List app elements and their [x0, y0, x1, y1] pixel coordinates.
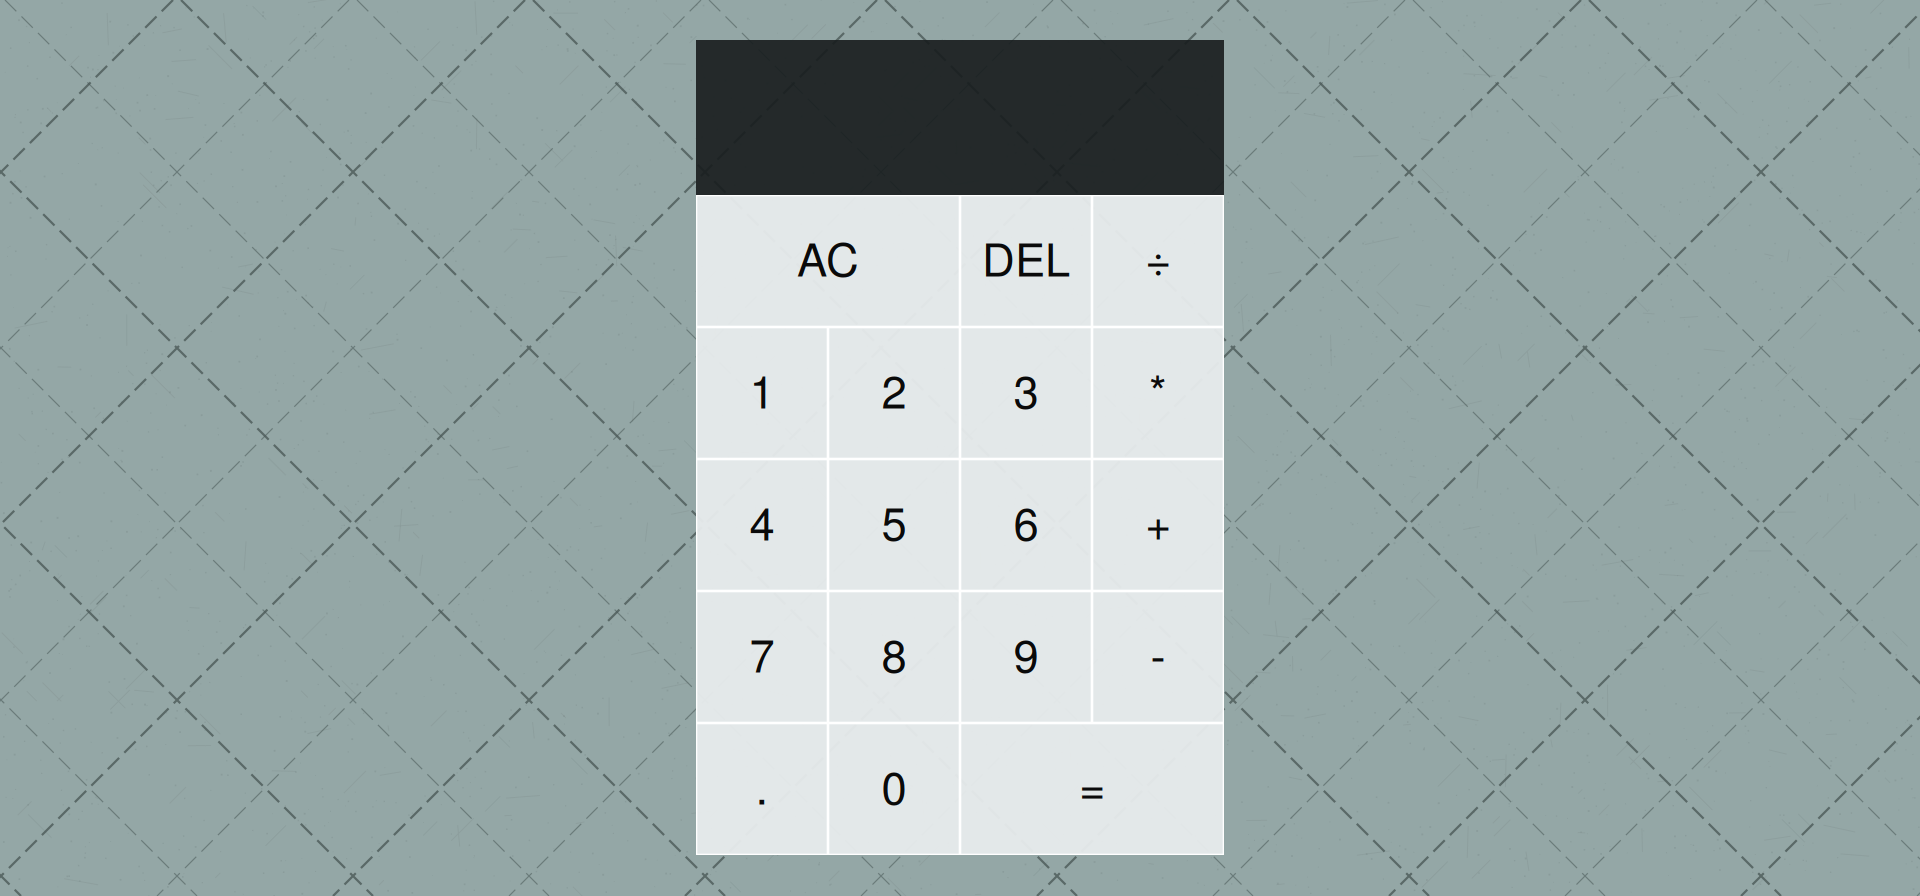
button[interactable]: = [960, 723, 1224, 855]
button[interactable]: 5 [828, 459, 960, 591]
staticText: 4 [749, 488, 774, 553]
staticText: 5 [881, 488, 906, 553]
staticText: AC [797, 224, 859, 289]
button[interactable]: 6 [960, 459, 1092, 591]
button[interactable]: 8 [828, 591, 960, 723]
button[interactable]: 3 [960, 327, 1092, 459]
staticText: 3 [1013, 356, 1038, 421]
button[interactable]: ÷ [1092, 195, 1224, 327]
staticText: - [1150, 620, 1165, 685]
button[interactable]: * [1092, 327, 1224, 459]
staticText: 0 [881, 752, 906, 817]
staticText: DEL [982, 224, 1070, 289]
button[interactable]: - [1092, 591, 1224, 723]
button[interactable]: 7 [696, 591, 828, 723]
staticText: 7 [749, 620, 774, 685]
button[interactable]: 0 [828, 723, 960, 855]
button[interactable]: 2 [828, 327, 960, 459]
staticText: 8 [881, 620, 906, 685]
button[interactable]: 9 [960, 591, 1092, 723]
button[interactable]: AC [696, 195, 960, 327]
button[interactable]: . [696, 723, 828, 855]
staticText: + [1145, 488, 1171, 553]
staticText: 9 [1013, 620, 1038, 685]
staticText: = [1079, 752, 1105, 817]
staticText: 2 [881, 356, 906, 421]
staticText: 6 [1013, 488, 1038, 553]
button[interactable]: + [1092, 459, 1224, 591]
staticText: * [1149, 356, 1167, 421]
button[interactable]: 1 [696, 327, 828, 459]
button[interactable]: 4 [696, 459, 828, 591]
staticText: . [755, 752, 768, 817]
button[interactable]: DEL [960, 195, 1092, 327]
staticText: 1 [749, 356, 774, 421]
staticText: ÷ [1145, 224, 1171, 289]
